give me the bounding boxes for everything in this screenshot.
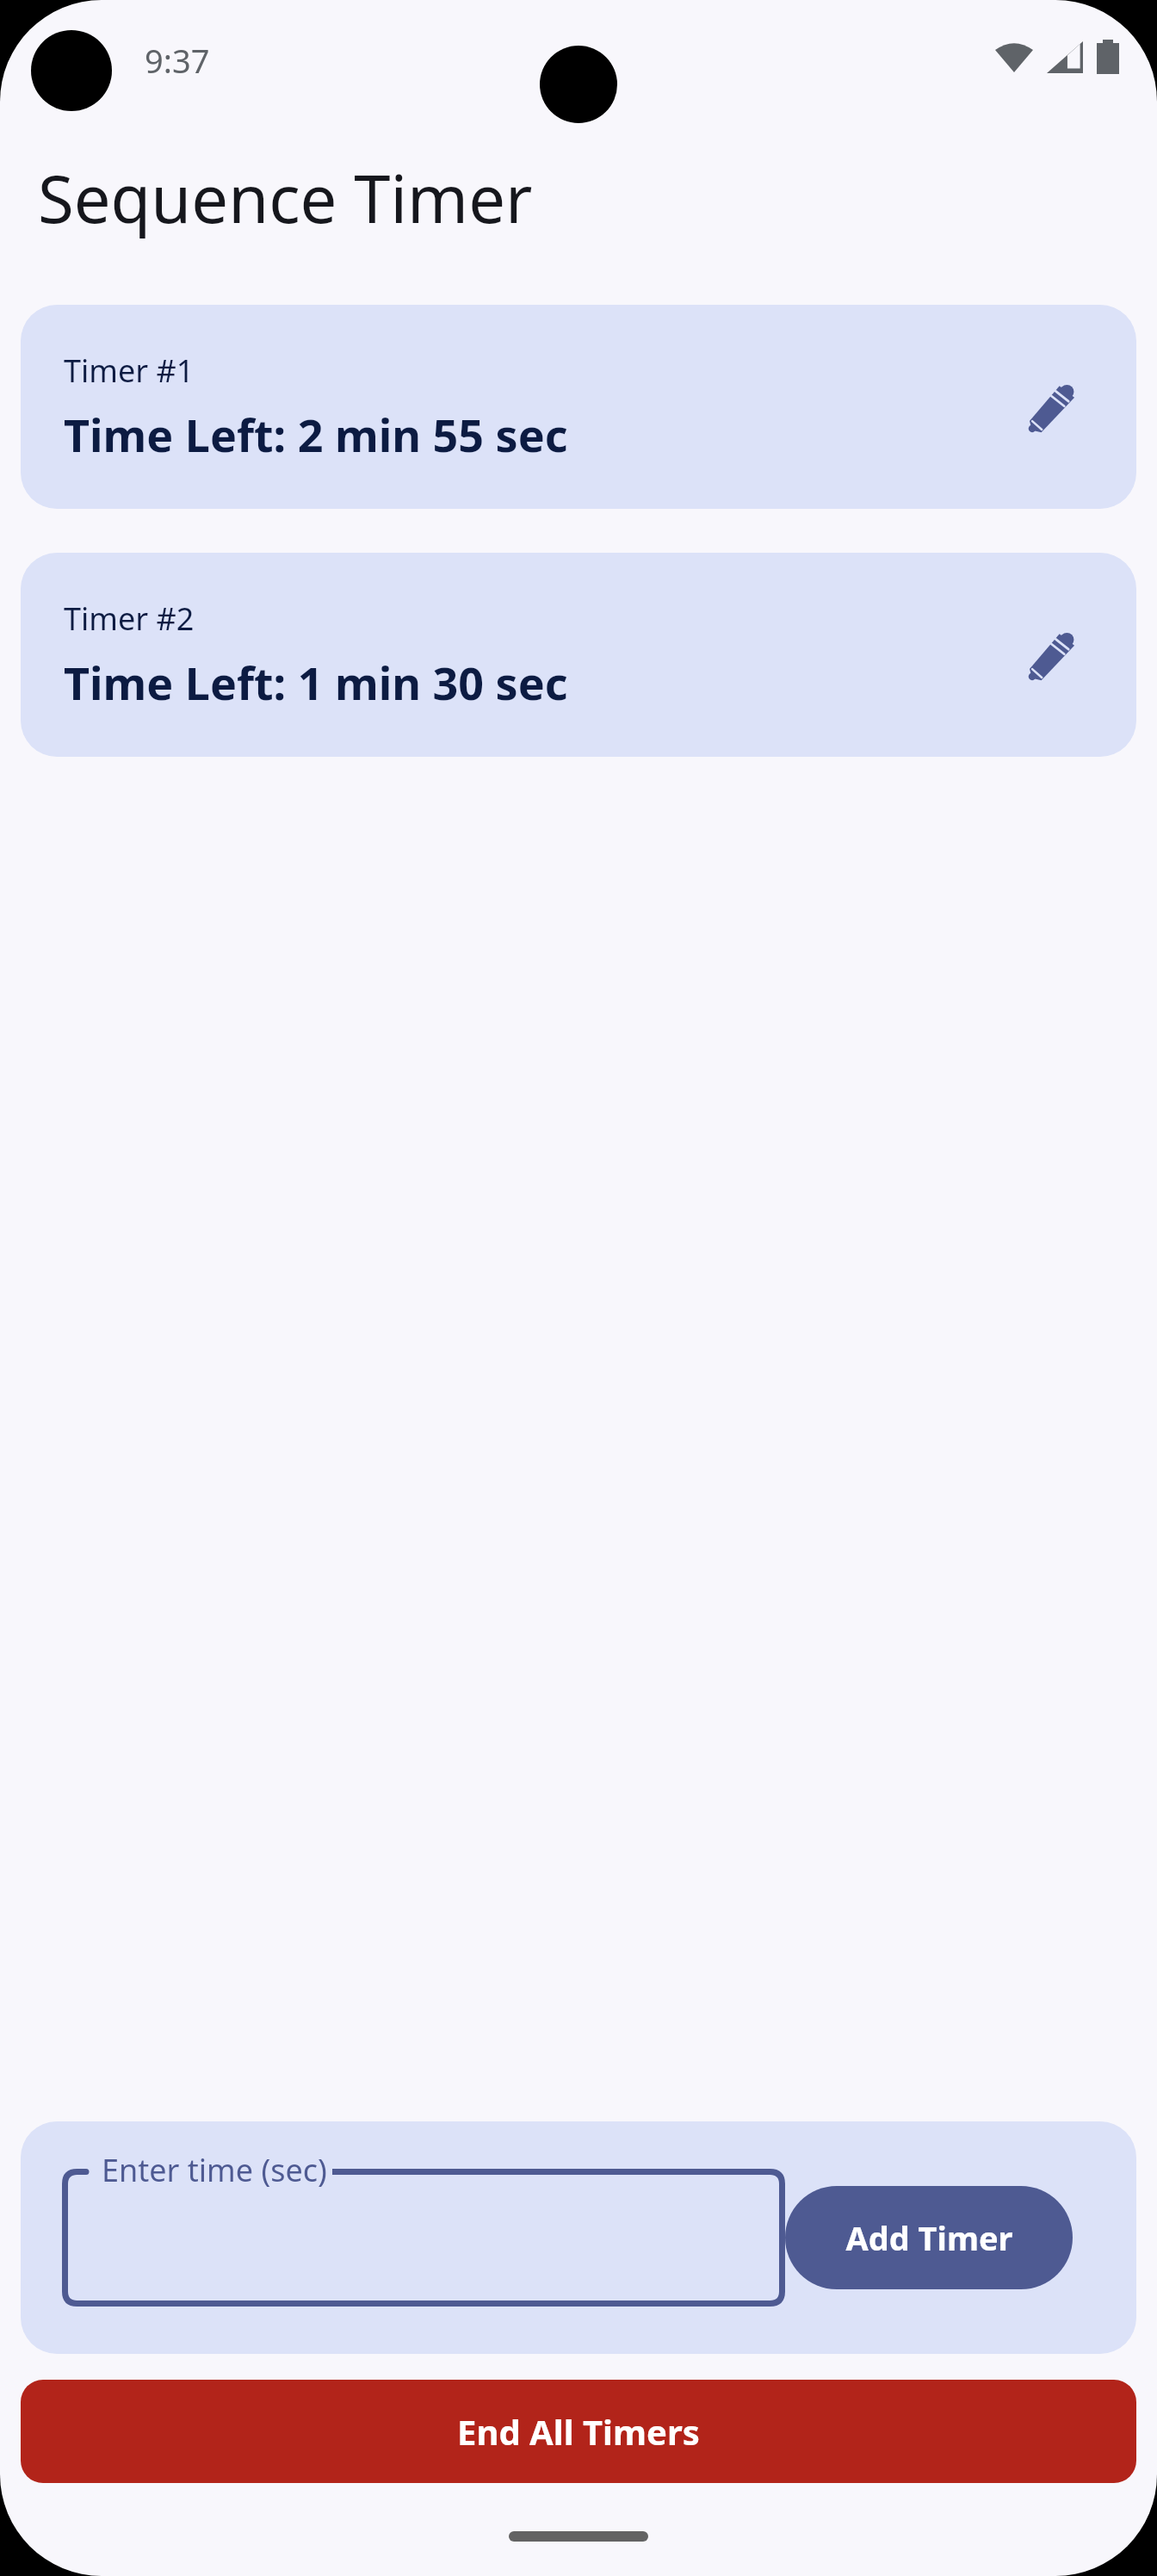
staticText: Sequence Timer: [38, 153, 533, 243]
button[interactable]: Timer #2: [21, 553, 1136, 757]
button[interactable]: End All Timers: [21, 2380, 1136, 2483]
button[interactable]: Enter time (sec): [62, 2169, 785, 2307]
button[interactable]: Add Timer: [785, 2186, 1073, 2289]
staticText: 9:37: [145, 38, 210, 83]
button[interactable]: Edit timer 2: [1018, 621, 1086, 690]
staticText: Add Timer: [845, 2215, 1013, 2260]
staticText: Time Left: 1 min 30 sec: [64, 652, 568, 713]
staticText: Timer #2: [64, 598, 195, 640]
staticText: Timer #1: [64, 350, 195, 392]
staticText: Time Left: 2 min 55 sec: [64, 404, 568, 465]
staticText: Enter time (sec): [102, 2149, 327, 2191]
staticText: End All Timers: [457, 2408, 700, 2455]
button[interactable]: Edit timer 1: [1018, 373, 1086, 442]
button[interactable]: Timer #1: [21, 305, 1136, 509]
